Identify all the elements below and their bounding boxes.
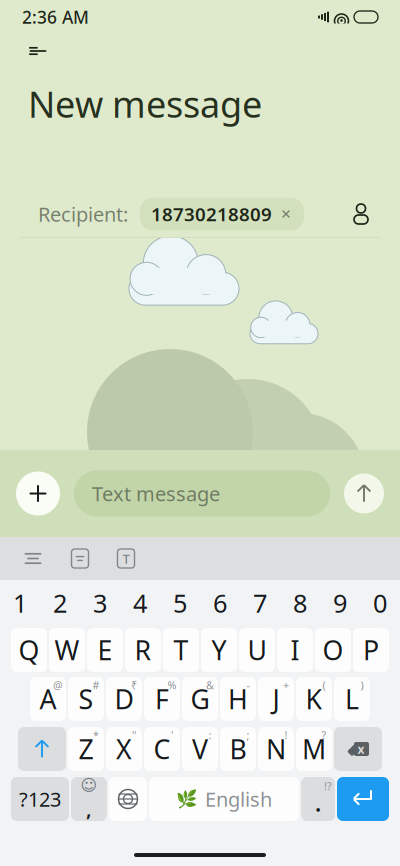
staticText: 8: [293, 586, 307, 620]
button[interactable]: 0: [360, 582, 400, 624]
button[interactable]: Y: [201, 628, 237, 672]
button[interactable]: C: [144, 727, 180, 771]
button[interactable]: Switch language: [109, 777, 147, 821]
button[interactable]: J: [258, 677, 294, 721]
button[interactable]: 18730218809: [140, 198, 304, 230]
staticText: New message: [28, 80, 262, 128]
staticText: A: [39, 681, 56, 717]
button[interactable]: Shift: [18, 727, 66, 771]
button[interactable]: M: [296, 727, 332, 771]
button[interactable]: Choose contact: [350, 203, 372, 225]
staticText: J: [272, 681, 279, 717]
staticText: 5: [173, 586, 187, 620]
button[interactable]: O: [315, 628, 351, 672]
button[interactable]: N: [258, 727, 294, 771]
button[interactable]: L: [334, 677, 370, 721]
staticText: E: [97, 632, 112, 668]
staticText: 🌿: [176, 789, 198, 809]
staticText: B: [229, 731, 246, 767]
button[interactable]: G: [182, 677, 218, 721]
button[interactable]: K: [296, 677, 332, 721]
button[interactable]: I: [277, 628, 313, 672]
button[interactable]: ?123: [11, 777, 69, 821]
button[interactable]: 5: [160, 582, 200, 624]
button[interactable]: W: [49, 628, 85, 672]
staticText: (: [322, 678, 325, 692]
button[interactable]: X: [106, 727, 142, 771]
button[interactable]: 8: [280, 582, 320, 624]
staticText: N: [266, 731, 286, 767]
staticText: 6: [213, 586, 227, 620]
button[interactable]: Send: [344, 473, 384, 513]
staticText: M: [302, 731, 326, 767]
staticText: 3: [93, 586, 107, 620]
button[interactable]: Clipboard: [68, 546, 92, 570]
button[interactable]: Enter: [337, 777, 389, 821]
button[interactable]: B: [220, 727, 256, 771]
staticText: ,: [86, 795, 92, 822]
staticText: O: [322, 632, 343, 668]
button[interactable]: 3: [80, 582, 120, 624]
button[interactable]: T: [163, 628, 199, 672]
button[interactable]: R: [125, 628, 161, 672]
staticText: !: [284, 728, 287, 742]
button[interactable]: P: [353, 628, 389, 672]
button[interactable]: 1: [0, 582, 40, 624]
staticText: H: [228, 681, 248, 717]
staticText: ?: [321, 728, 326, 742]
button[interactable]: 4: [120, 582, 160, 624]
staticText: P: [363, 632, 379, 668]
staticText: T: [173, 632, 188, 668]
staticText: .: [315, 788, 321, 818]
staticText: !?: [324, 779, 332, 793]
button[interactable]: S: [68, 677, 104, 721]
staticText: I: [290, 632, 299, 668]
staticText: X: [116, 731, 132, 767]
button[interactable]: Menu: [20, 547, 46, 569]
button[interactable]: A: [30, 677, 66, 721]
button[interactable]: Z: [68, 727, 104, 771]
button[interactable]: E: [87, 628, 123, 672]
button[interactable]: Period: [301, 777, 335, 821]
staticText: ₹: [131, 678, 137, 692]
staticText: G: [190, 681, 209, 717]
button[interactable]: Text settings: [114, 546, 138, 570]
staticText: C: [153, 731, 170, 767]
button[interactable]: 7: [240, 582, 280, 624]
button[interactable]: 2: [40, 582, 80, 624]
button[interactable]: V: [182, 727, 218, 771]
staticText: #: [92, 678, 99, 692]
button[interactable]: 9: [320, 582, 360, 624]
staticText: 4: [133, 586, 147, 620]
staticText: R: [134, 632, 151, 668]
staticText: V: [192, 731, 208, 767]
staticText: 1: [13, 586, 27, 620]
staticText: L: [345, 681, 359, 717]
staticText: @: [53, 678, 63, 692]
button[interactable]: U: [239, 628, 275, 672]
staticText: Text message: [92, 480, 220, 507]
staticText: Y: [211, 632, 226, 668]
staticText: -: [246, 678, 249, 692]
staticText: 7: [253, 586, 267, 620]
staticText: Recipient:: [38, 201, 128, 227]
staticText: 2: [53, 586, 67, 620]
button[interactable]: Back: [0, 34, 400, 68]
button[interactable]: Emoji and comma: [71, 777, 107, 821]
staticText: +: [283, 678, 289, 692]
button[interactable]: H: [220, 677, 256, 721]
staticText: ?123: [19, 786, 61, 812]
button[interactable]: 6: [200, 582, 240, 624]
staticText: &: [206, 678, 214, 692]
staticText: K: [305, 681, 322, 717]
staticText: W: [54, 632, 79, 668]
button[interactable]: D: [106, 677, 142, 721]
button[interactable]: Text message: [74, 470, 330, 516]
button[interactable]: F: [144, 677, 180, 721]
button[interactable]: Q: [11, 628, 47, 672]
button[interactable]: Backspace: [334, 727, 382, 771]
staticText: ": [132, 728, 136, 742]
staticText: %: [167, 678, 176, 692]
button[interactable]: Add attachment: [16, 471, 60, 515]
button[interactable]: 🌿: [149, 777, 299, 821]
